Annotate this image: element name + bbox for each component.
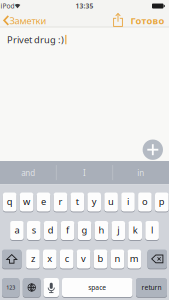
button[interactable]: f: [61, 221, 74, 240]
button[interactable]: Share: [110, 11, 126, 29]
button[interactable]: Add attachment: [143, 139, 163, 160]
button[interactable]: 123: [2, 278, 19, 297]
button[interactable]: space: [62, 278, 132, 297]
staticText: Privet drug :): [7, 33, 64, 46]
button[interactable]: I: [57, 161, 111, 184]
button[interactable]: h: [95, 221, 108, 240]
button[interactable]: Delete: [147, 249, 167, 268]
button[interactable]: c: [60, 249, 73, 268]
button[interactable]: u: [104, 192, 118, 211]
staticText: q: [7, 195, 13, 208]
button[interactable]: v: [77, 249, 90, 268]
staticText: t: [76, 195, 79, 208]
staticText: g: [81, 224, 87, 236]
button[interactable]: j: [111, 221, 125, 240]
staticText: j: [117, 224, 119, 236]
button[interactable]: b: [94, 249, 107, 268]
button[interactable]: p: [155, 192, 169, 211]
button[interactable]: Next keyboard: [23, 278, 41, 297]
staticText: x: [47, 252, 52, 265]
staticText: w: [23, 195, 30, 208]
button[interactable]: w: [20, 192, 33, 211]
button[interactable]: x: [43, 249, 57, 268]
staticText: r: [58, 195, 62, 208]
staticText: a: [14, 224, 19, 236]
button[interactable]: m: [127, 249, 141, 268]
staticText: and: [21, 167, 35, 178]
button[interactable]: z: [26, 249, 40, 268]
staticText: b: [97, 252, 103, 265]
staticText: d: [48, 224, 54, 236]
staticText: 13:35: [75, 2, 93, 10]
staticText: m: [130, 252, 139, 265]
staticText: return: [141, 283, 161, 292]
staticText: h: [98, 224, 104, 236]
button[interactable]: a: [10, 221, 24, 240]
button[interactable]: return: [136, 278, 167, 297]
button[interactable]: g: [78, 221, 91, 240]
button[interactable]: d: [44, 221, 57, 240]
button[interactable]: q: [3, 192, 16, 211]
button[interactable]: o: [138, 192, 152, 211]
button[interactable]: n: [111, 249, 124, 268]
staticText: e: [41, 195, 46, 208]
staticText: in: [137, 167, 144, 178]
button[interactable]: in: [114, 161, 168, 184]
staticText: l: [151, 224, 153, 236]
button[interactable]: y: [87, 192, 101, 211]
button[interactable]: Готово: [130, 13, 164, 29]
staticText: f: [66, 224, 69, 236]
staticText: n: [114, 252, 120, 265]
button[interactable]: Shift: [2, 249, 21, 268]
button[interactable]: t: [70, 192, 84, 211]
staticText: Готово: [130, 14, 164, 27]
staticText: c: [65, 252, 69, 265]
button[interactable]: Заметки: [0, 0, 46, 27]
staticText: s: [32, 224, 36, 236]
staticText: I: [83, 167, 86, 178]
staticText: space: [88, 283, 106, 292]
staticText: k: [133, 224, 138, 236]
staticText: u: [108, 195, 114, 208]
button[interactable]: r: [54, 192, 67, 211]
staticText: p: [159, 195, 165, 208]
staticText: y: [92, 195, 97, 208]
button[interactable]: e: [37, 192, 50, 211]
staticText: iPod: [0, 2, 14, 10]
staticText: o: [142, 195, 148, 208]
button[interactable]: and: [1, 161, 55, 184]
button[interactable]: Dictate: [43, 278, 59, 297]
staticText: Заметки: [9, 14, 46, 27]
staticText: z: [31, 252, 35, 265]
button[interactable]: i: [121, 192, 135, 211]
button[interactable]: k: [128, 221, 142, 240]
staticText: i: [127, 195, 129, 208]
staticText: 123: [6, 284, 15, 291]
staticText: v: [81, 252, 86, 265]
button[interactable]: s: [27, 221, 41, 240]
button[interactable]: l: [145, 221, 159, 240]
